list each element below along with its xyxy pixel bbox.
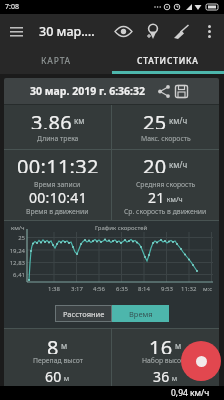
button[interactable]: 00:11:32 [4,150,111,220]
staticText: 12,83 [9,259,25,267]
staticText: 25 [143,109,167,129]
button[interactable]: 3,86 [4,105,111,149]
staticText: Набор высоты [142,356,190,365]
staticText: 60 [45,367,62,386]
staticText: км/ч [167,159,188,170]
staticText: 3,86 [31,109,72,129]
staticText: 19,24 [9,247,25,255]
button[interactable] [6,21,26,41]
button[interactable] [142,21,163,42]
staticText: 21 [148,188,165,207]
staticText: 16 [149,334,173,354]
staticText: м:с [203,285,213,293]
button[interactable]: Время [112,305,169,322]
button[interactable]: 20 [112,150,219,220]
button[interactable]: 8 [4,329,111,400]
staticText: км/ч [165,195,183,205]
staticText: м [62,374,70,384]
staticText: Время в движении [26,207,89,216]
staticText: 0,94 км/ч [171,387,210,399]
staticText: 36 [153,367,170,386]
staticText: км/ч [11,224,25,232]
staticText: км [72,115,85,126]
staticText: км/ч [167,115,188,126]
button[interactable] [171,21,192,42]
staticText: Перепад высот [33,356,83,365]
button[interactable]: 30 мар. 2019 г. 6:36:32 [4,78,219,104]
button[interactable] [113,21,134,42]
staticText: 20 [143,153,167,173]
staticText: Средняя скорость [136,180,196,189]
button[interactable] [200,22,218,40]
staticText: КАРТА [41,55,71,67]
staticText: 00:11:32 [17,153,99,173]
staticText: 8 [47,334,59,354]
staticText: 7:08 [5,2,19,12]
button[interactable]: 25 [112,105,219,149]
staticText: 9:53 [161,285,173,293]
staticText: График скоростей [95,224,148,232]
staticText: 11:32 [181,285,197,293]
staticText: м [170,374,178,384]
staticText: 00:10:41 [29,188,87,207]
staticText: 8:14 [138,285,150,293]
staticText: Время записи [34,180,81,189]
button[interactable]: Расстояние [55,305,112,322]
staticText: Время [129,309,153,319]
staticText: 25 [18,234,25,242]
button[interactable] [181,341,221,381]
staticText: СТАТИСТИКА [137,55,199,67]
staticText: 30 мар. 2019 г. 6:36:32 [30,84,146,98]
staticText: Расстояние [63,309,105,319]
staticText: Макс. скорость [141,134,191,143]
staticText: 6:35 [116,285,128,293]
button[interactable]: КАРТА [0,48,112,74]
staticText: 6,41 [13,271,25,279]
staticText: Ср. скорость в движении [124,207,207,216]
staticText: 30 мар.… [39,23,95,40]
staticText: 3:17 [71,285,83,293]
button[interactable]: СТАТИСТИКА [112,48,224,74]
staticText: 4:56 [93,285,105,293]
staticText: 1:38 [48,285,60,293]
button[interactable]: 16 [112,329,219,400]
staticText: м [59,340,68,351]
staticText: м [173,340,182,351]
staticText: Длина трека [37,134,79,143]
